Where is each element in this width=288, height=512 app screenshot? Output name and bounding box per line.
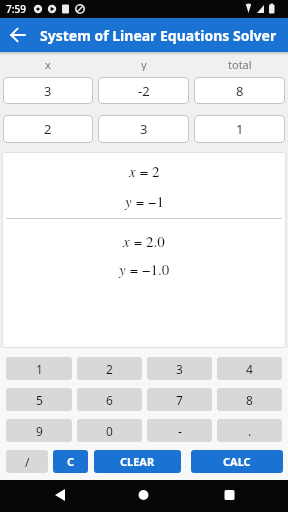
button[interactable]: 1	[6, 357, 72, 380]
button[interactable]: 5	[6, 388, 72, 411]
staticText: y	[141, 57, 147, 71]
staticText: CLEAR	[120, 454, 155, 469]
staticText: 6	[106, 392, 113, 408]
staticText: x	[129, 161, 136, 181]
staticText: 1	[36, 361, 43, 377]
staticText: 3	[44, 82, 52, 100]
button[interactable]: 8	[217, 388, 282, 411]
staticText: x	[123, 231, 130, 251]
button[interactable]: CALC	[191, 450, 283, 473]
staticText: 2	[106, 361, 113, 377]
button[interactable]: CLEAR	[94, 450, 181, 473]
staticText: 5	[36, 392, 43, 408]
staticText: 3	[140, 120, 148, 138]
staticText: /	[25, 454, 30, 470]
staticText: = −1.0	[126, 259, 170, 279]
staticText: 4	[246, 361, 253, 377]
staticText: y	[125, 191, 132, 211]
staticText: .	[248, 423, 252, 439]
staticText: 8	[236, 82, 244, 100]
staticText: 3	[176, 361, 183, 377]
button[interactable]: 2	[3, 115, 93, 143]
button[interactable]: /	[6, 450, 48, 473]
staticText: 9	[36, 423, 43, 439]
staticText: 1	[236, 120, 244, 138]
staticText: 7:59	[6, 2, 26, 16]
button[interactable]	[6, 23, 30, 47]
staticText: -2	[138, 82, 150, 100]
staticText: x	[45, 57, 51, 71]
staticText: total	[228, 57, 252, 71]
button[interactable]: 2	[77, 357, 142, 380]
button[interactable]	[192, 480, 288, 512]
staticText: 7	[176, 392, 183, 408]
button[interactable]: C	[53, 450, 88, 473]
button[interactable]	[0, 480, 96, 512]
button[interactable]: 7	[147, 388, 212, 411]
staticText: 2	[44, 120, 52, 138]
staticText: = −1	[132, 191, 164, 211]
staticText: = 2.0	[130, 231, 165, 251]
button[interactable]: -	[147, 419, 212, 442]
button[interactable]: 3	[98, 115, 189, 143]
button[interactable]	[96, 480, 192, 512]
button[interactable]: 3	[3, 77, 93, 104]
staticText: C	[67, 454, 75, 469]
staticText: 0	[106, 423, 113, 439]
button[interactable]: 0	[77, 419, 142, 442]
button[interactable]: -2	[98, 77, 189, 104]
staticText: 8	[246, 392, 253, 408]
button[interactable]: 3	[147, 357, 212, 380]
staticText: System of Linear Equations Solver	[40, 26, 277, 45]
button[interactable]: 6	[77, 388, 142, 411]
button[interactable]: 8	[194, 77, 285, 104]
button[interactable]: .	[217, 419, 282, 442]
staticText: CALC	[223, 454, 251, 469]
button[interactable]: 1	[194, 115, 285, 143]
staticText: -	[178, 423, 182, 439]
staticText: y	[119, 259, 126, 279]
button[interactable]: 4	[217, 357, 282, 380]
button[interactable]: 9	[6, 419, 72, 442]
staticText: = 2	[136, 161, 160, 181]
